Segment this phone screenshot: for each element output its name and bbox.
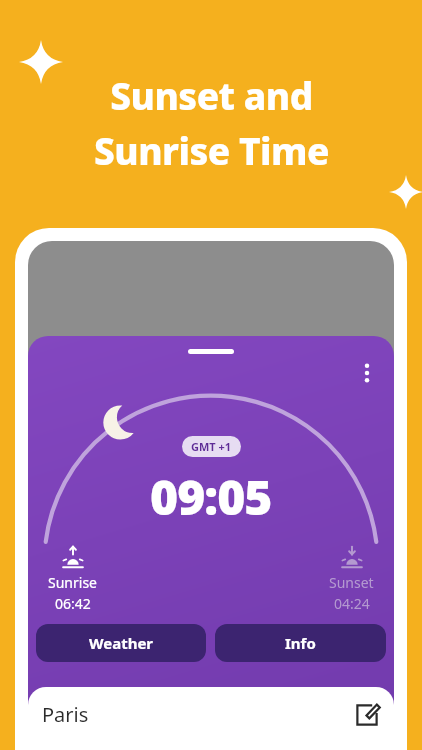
- staticText: Info: [285, 633, 316, 653]
- staticText: Sunrise: [48, 573, 97, 592]
- staticText: Paris: [42, 701, 89, 728]
- button[interactable]: Weather: [36, 624, 206, 662]
- staticText: Sunset and: [110, 70, 313, 120]
- staticText: Weather: [89, 633, 154, 653]
- button[interactable]: Sunrise: [44, 544, 101, 613]
- button[interactable]: Edit city: [354, 702, 380, 728]
- button[interactable]: Info: [215, 624, 386, 662]
- staticText: 06:42: [55, 594, 91, 613]
- button[interactable]: GMT +1: [182, 436, 241, 457]
- staticText: 09:05: [150, 464, 272, 529]
- staticText: Sunrise Time: [94, 125, 329, 175]
- button[interactable]: Sunset: [325, 544, 378, 613]
- button[interactable]: More options: [352, 358, 382, 388]
- staticText: 04:24: [334, 594, 370, 613]
- staticText: Sunset: [329, 573, 374, 592]
- staticText: GMT +1: [191, 439, 232, 454]
- button[interactable]: Paris: [28, 687, 394, 750]
